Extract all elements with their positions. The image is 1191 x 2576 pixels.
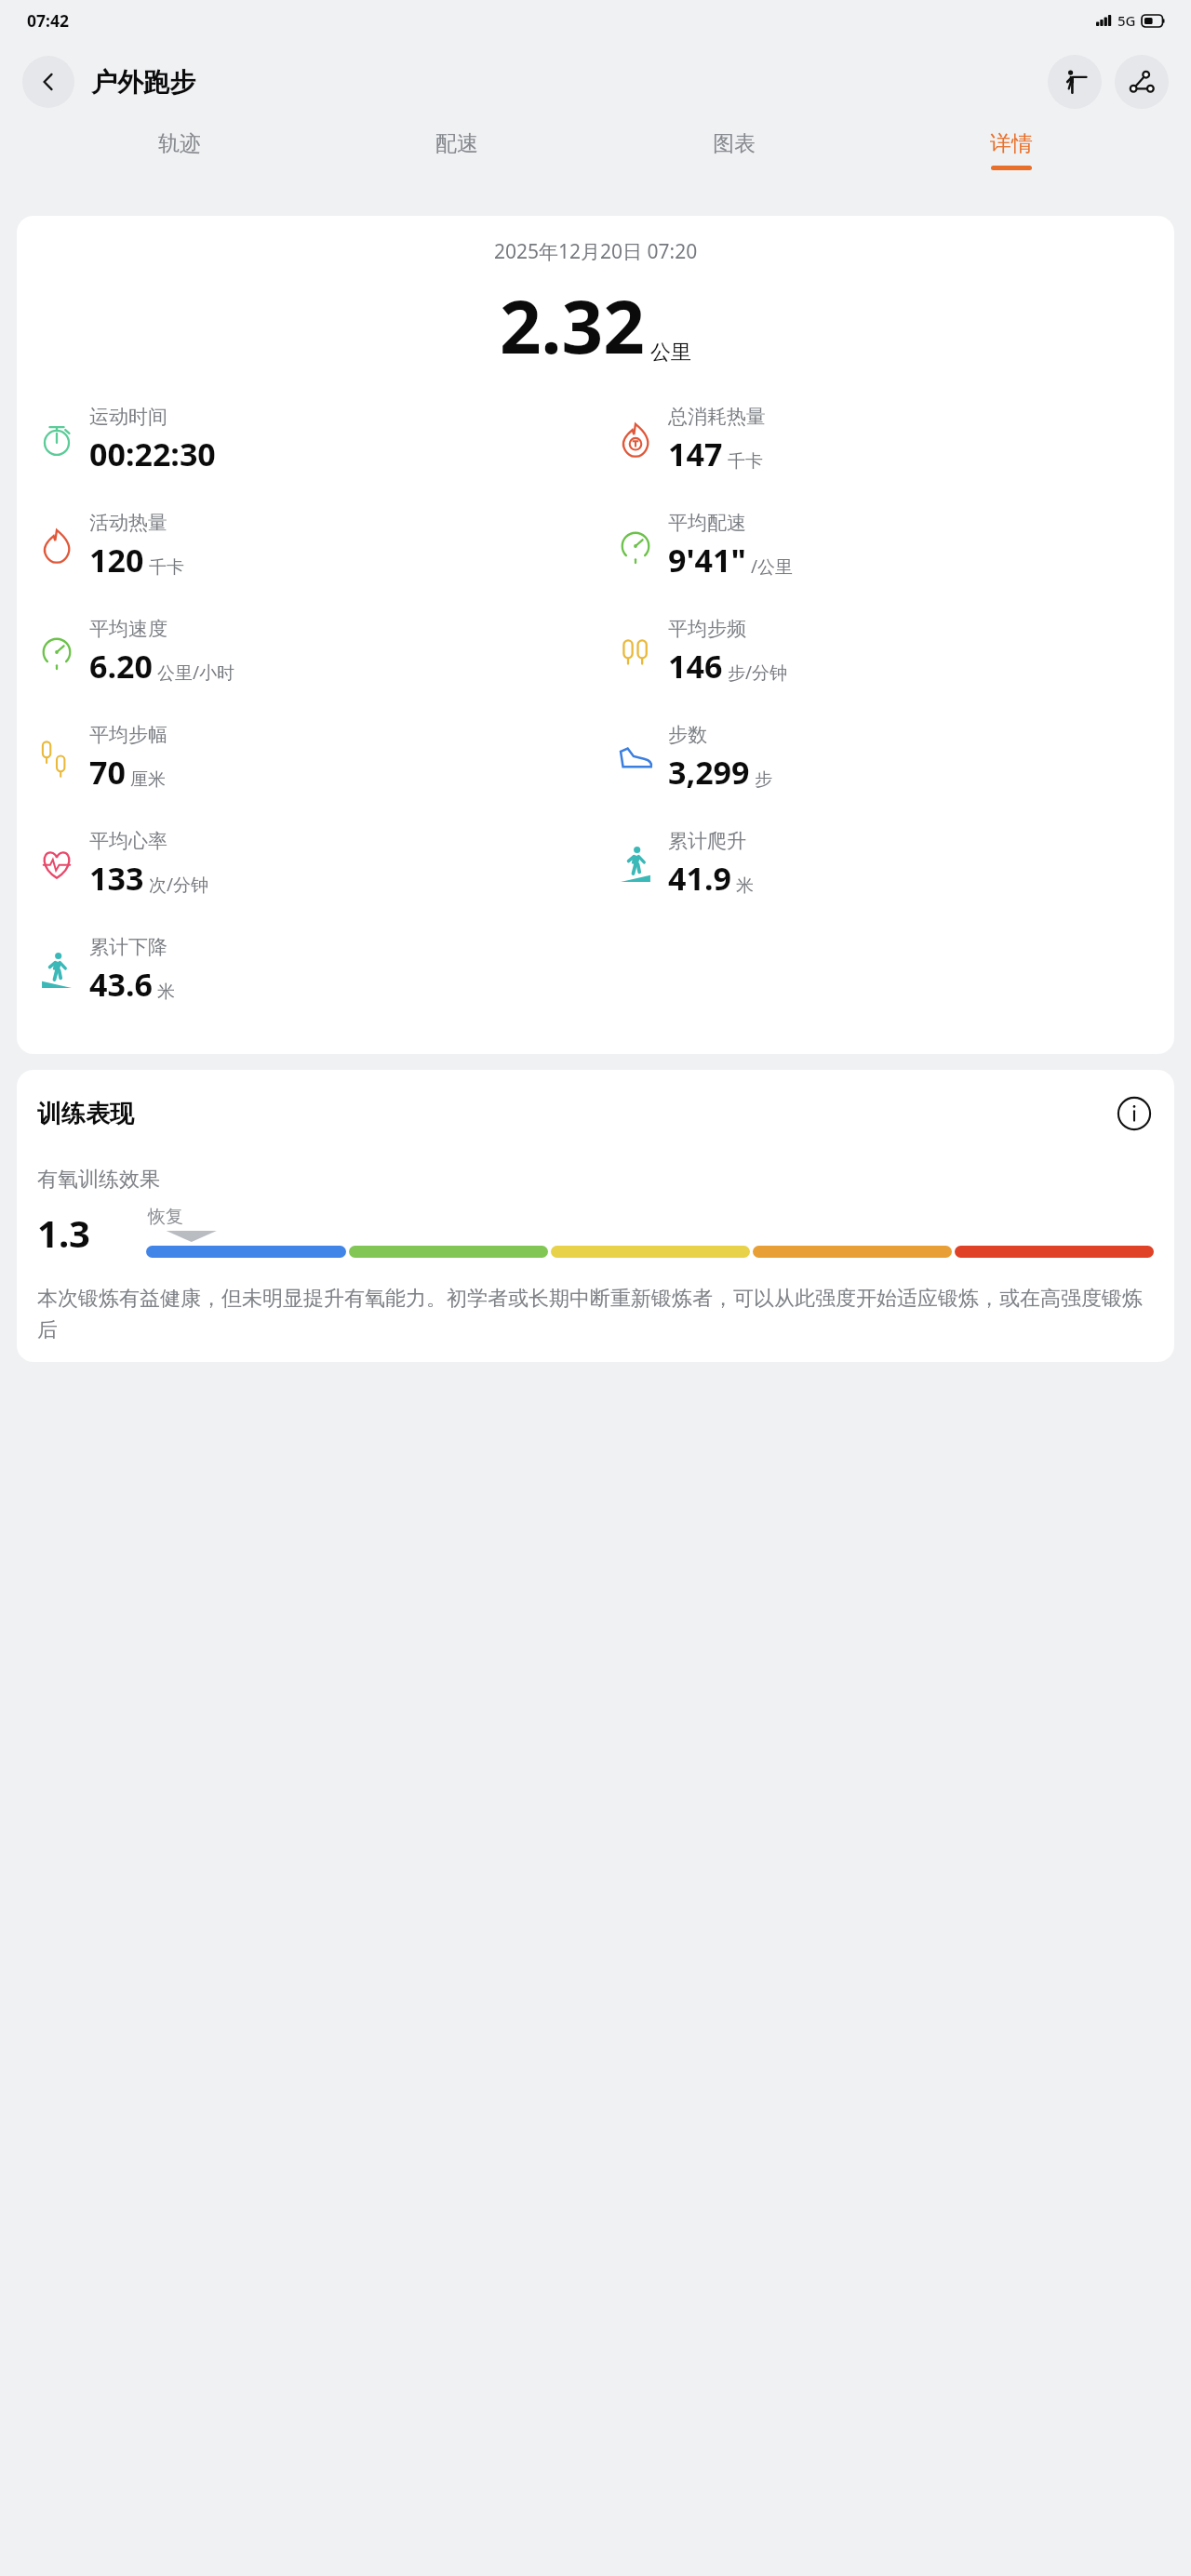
button[interactable]: 总消耗热量	[616, 405, 1174, 475]
staticText: 147	[668, 433, 723, 475]
staticText: 累计下降	[89, 935, 167, 959]
button[interactable]: 步数	[616, 723, 1174, 794]
button[interactable]: 运动时间	[37, 405, 595, 475]
staticText: 千卡	[728, 450, 763, 473]
button[interactable]: 平均速度	[37, 617, 595, 687]
staticText: 平均心率	[89, 829, 167, 853]
staticText: /公里	[751, 554, 794, 579]
staticText: 平均步频	[668, 617, 746, 641]
staticText: 3,299	[668, 751, 750, 794]
staticText: 133	[89, 857, 144, 900]
button[interactable]: 平均步幅	[37, 723, 595, 794]
button[interactable]: 平均配速	[616, 511, 1174, 581]
staticText: 公里/小时	[157, 661, 235, 685]
staticText: 41.9	[668, 857, 731, 900]
staticText: 00:22:30	[89, 433, 216, 475]
staticText: 米	[736, 874, 754, 897]
staticText: 活动热量	[89, 511, 167, 535]
staticText: 运动时间	[89, 405, 167, 429]
staticText: 步数	[668, 723, 707, 747]
staticText: 本次锻炼有益健康，但未明显提升有氧能力。初学者或长期中断重新锻炼者，可以从此强度…	[37, 1286, 1154, 1343]
staticText: 总消耗热量	[668, 405, 766, 429]
button[interactable]: 配速	[435, 130, 478, 166]
staticText: 平均速度	[89, 617, 167, 641]
button[interactable]: 详情	[990, 130, 1033, 170]
staticText: 厘米	[130, 768, 166, 791]
staticText: 米	[157, 981, 175, 1003]
staticText: 训练表现	[37, 1099, 134, 1129]
staticText: 平均步幅	[89, 723, 167, 747]
button[interactable]: Back	[22, 56, 74, 108]
button[interactable]: 图表	[713, 130, 756, 166]
staticText: 43.6	[89, 963, 153, 1006]
staticText: 配速	[435, 130, 478, 157]
staticText: 恢复	[148, 1206, 183, 1228]
staticText: 户外跑步	[91, 66, 195, 99]
staticText: 千卡	[149, 556, 184, 579]
button[interactable]: 平均心率	[37, 829, 595, 900]
staticText: 2025年12月20日 07:20	[494, 238, 698, 265]
staticText: 70	[89, 751, 126, 794]
button[interactable]: 平均步频	[616, 617, 1174, 687]
staticText: 公里	[650, 340, 691, 366]
staticText: 9'41"	[668, 539, 746, 581]
staticText: 07:42	[27, 9, 69, 32]
staticText: 步	[755, 768, 772, 791]
staticText: 平均配速	[668, 511, 746, 535]
staticText: 步/分钟	[728, 661, 788, 685]
staticText: 5G	[1117, 11, 1136, 30]
staticText: 6.20	[89, 645, 153, 687]
button[interactable]: 累计爬升	[616, 829, 1174, 900]
button[interactable]: 活动热量	[37, 511, 595, 581]
staticText: 2.32	[500, 276, 645, 375]
staticText: 图表	[713, 130, 756, 157]
staticText: 累计爬升	[668, 829, 746, 853]
staticText: 详情	[990, 130, 1033, 157]
button[interactable]: Share	[1115, 55, 1169, 109]
button[interactable]: 轨迹	[158, 130, 201, 166]
staticText: 120	[89, 539, 144, 581]
staticText: 146	[668, 645, 723, 687]
button[interactable]: Stretch	[1048, 55, 1102, 109]
button[interactable]: Info	[1115, 1094, 1154, 1133]
staticText: 次/分钟	[149, 873, 209, 897]
staticText: 1.3	[37, 1208, 90, 1258]
staticText: 轨迹	[158, 130, 201, 157]
staticText: 有氧训练效果	[37, 1167, 160, 1193]
button[interactable]: 累计下降	[37, 935, 595, 1006]
